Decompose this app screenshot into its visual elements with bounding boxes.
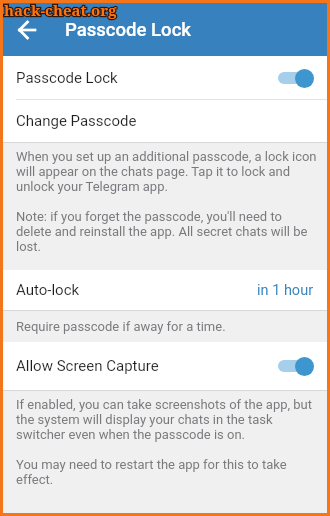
button[interactable]: Auto-lock — [3, 270, 327, 310]
staticText: Note: if you forget the passcode, you'll… — [16, 209, 317, 254]
staticText: When you set up an additional passcode, … — [16, 149, 317, 194]
staticText: hack-cheat.org — [4, 0, 117, 20]
button[interactable]: Passcode Lock — [3, 56, 327, 99]
staticText: Auto-lock — [16, 281, 80, 299]
staticText: Require passcode if away for a time. — [16, 319, 226, 334]
button[interactable]: Change Passcode — [3, 100, 327, 142]
staticText: in 1 hour — [257, 282, 314, 299]
staticText: If enabled, you can take screenshots of … — [16, 397, 317, 442]
button[interactable] — [3, 6, 51, 54]
staticText: hack-cheat.org — [4, 0, 117, 20]
button[interactable]: Allow Screen Capture — [3, 342, 327, 390]
staticText: Allow Screen Capture — [16, 357, 159, 375]
staticText: Change Passcode — [16, 112, 137, 130]
staticText: Passcode Lock — [65, 19, 191, 41]
staticText: You may need to restart the app for this… — [16, 457, 317, 487]
staticText: Passcode Lock — [16, 69, 118, 87]
